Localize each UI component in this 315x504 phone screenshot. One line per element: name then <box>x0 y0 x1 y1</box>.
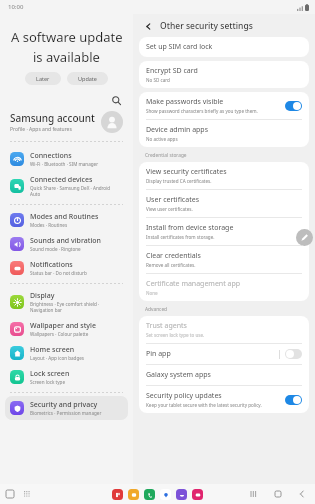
staticText: Layout · App icon badges <box>30 355 85 361</box>
staticText: Install certificates from storage. <box>146 234 215 240</box>
button[interactable] <box>285 395 302 405</box>
staticText: Device admin apps <box>146 125 209 135</box>
button[interactable]: App 0 <box>112 489 123 500</box>
button[interactable] <box>285 101 302 111</box>
staticText: Show password characters briefly as you … <box>146 108 258 114</box>
button[interactable]: Back <box>297 489 307 499</box>
staticText: Sounds and vibration <box>30 236 102 246</box>
staticText: Later <box>36 75 50 82</box>
staticText: Security policy updates <box>146 391 222 401</box>
button[interactable]: Notifications <box>0 256 133 280</box>
button[interactable]: Search <box>109 93 123 107</box>
staticText: Install from device storage <box>146 223 234 233</box>
staticText: Quick Share · Samsung DeX · Android Auto <box>30 185 111 197</box>
staticText: Home screen <box>30 345 75 355</box>
staticText: Set up SIM card lock <box>146 42 213 52</box>
button[interactable]: App 3 <box>160 489 171 500</box>
staticText: A software update <box>11 28 123 46</box>
staticText: Profile · Apps and features <box>10 126 72 133</box>
staticText: Keep your tablet secure with the latest … <box>146 402 262 408</box>
button[interactable]: View security certificates <box>139 162 309 189</box>
button[interactable]: Device admin apps <box>139 120 309 147</box>
staticText: Credential storage <box>145 152 187 159</box>
staticText: Wi-Fi · Bluetooth · SIM manager <box>30 161 99 167</box>
button[interactable]: Later <box>25 72 61 85</box>
button[interactable]: Pin app <box>139 344 309 364</box>
button[interactable]: All apps <box>22 489 32 499</box>
staticText: Set screen lock type to use. <box>146 332 205 338</box>
staticText: Notifications <box>30 260 73 270</box>
button[interactable]: Samsung account <box>0 109 133 141</box>
button[interactable]: User certificates <box>139 190 309 217</box>
button[interactable]: Update <box>67 72 108 85</box>
button[interactable]: Install from device storage <box>139 218 309 245</box>
staticText: Encrypt SD card <box>146 66 198 76</box>
button[interactable]: Recents <box>249 489 259 499</box>
staticText: No SD card <box>146 77 170 83</box>
staticText: Update <box>78 75 97 82</box>
staticText: Display <box>30 291 55 301</box>
staticText: Certificate management app <box>146 279 241 289</box>
staticText: Lock screen <box>30 369 70 379</box>
staticText: View security certificates <box>146 167 227 177</box>
staticText: Wallpaper and style <box>30 321 96 331</box>
staticText: Other security settings <box>160 20 253 32</box>
staticText: Connected devices <box>30 175 93 185</box>
button[interactable]: Clear credentials <box>139 246 309 273</box>
staticText: Galaxy system apps <box>146 370 211 380</box>
button[interactable]: Lock screen <box>0 365 133 389</box>
button[interactable]: App 2 <box>144 489 155 500</box>
staticText: Display trusted CA certificates. <box>146 178 212 184</box>
staticText: Clear credentials <box>146 251 201 261</box>
staticText: User certificates <box>146 195 199 205</box>
staticText: Status bar · Do not disturb <box>30 270 87 276</box>
staticText: Brightness · Eye comfort shield · Naviga… <box>30 301 100 313</box>
button[interactable]: Modes and Routines <box>0 208 133 232</box>
staticText: No active apps <box>146 136 178 142</box>
button[interactable]: Security policy updates <box>139 386 309 413</box>
button[interactable]: Certificate management app <box>139 274 309 301</box>
button[interactable]: Edit <box>296 229 313 246</box>
staticText: Screen lock type <box>30 379 65 385</box>
button[interactable]: Home <box>273 489 283 499</box>
button[interactable]: Galaxy system apps <box>139 365 309 385</box>
staticText: Samsung account <box>10 111 95 125</box>
staticText: 10:00 <box>8 3 24 11</box>
button[interactable] <box>285 349 302 359</box>
button[interactable]: Sounds and vibration <box>0 232 133 256</box>
staticText: is available <box>33 48 100 66</box>
staticText: Remove all certificates. <box>146 262 196 268</box>
button[interactable]: App 5 <box>192 489 203 500</box>
button[interactable]: Recents <box>5 489 15 499</box>
button[interactable]: Home screen <box>0 341 133 365</box>
button[interactable]: Set up SIM card lock <box>139 37 309 57</box>
staticText: Wallpapers · Colour palette <box>30 331 89 337</box>
staticText: Sound mode · Ringtone <box>30 246 81 252</box>
button[interactable]: Back <box>141 19 155 33</box>
button[interactable]: Connections <box>0 147 133 171</box>
staticText: Modes and Routines <box>30 212 99 222</box>
button[interactable]: Trust agents <box>139 316 309 343</box>
staticText: Biometrics · Permission manager <box>30 410 102 416</box>
staticText: None <box>146 290 158 296</box>
button[interactable]: Display <box>0 287 133 317</box>
button[interactable]: App 1 <box>128 489 139 500</box>
button[interactable]: Wallpaper and style <box>0 317 133 341</box>
staticText: Advanced <box>145 306 168 313</box>
staticText: Security and privacy <box>30 400 98 410</box>
staticText: Modes · Routines <box>30 222 68 228</box>
staticText: Trust agents <box>146 321 187 331</box>
button[interactable]: Make passwords visible <box>139 92 309 119</box>
staticText: Make passwords visible <box>146 97 224 107</box>
button[interactable]: Security and privacy <box>5 396 128 420</box>
staticText: View user certificates. <box>146 206 193 212</box>
button[interactable]: Connected devices <box>0 171 133 201</box>
staticText: Pin app <box>146 349 171 359</box>
button[interactable]: App 4 <box>176 489 187 500</box>
staticText: Connections <box>30 151 72 161</box>
button[interactable]: Encrypt SD card <box>139 61 309 88</box>
